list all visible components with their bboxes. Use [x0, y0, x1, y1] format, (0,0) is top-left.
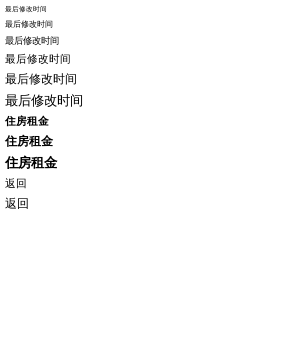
- staticText: 最后修改时间: [5, 19, 53, 29]
- staticText: 最后修改时间: [5, 5, 47, 13]
- staticText: 住房租金: [5, 115, 49, 128]
- staticText: 返回: [5, 196, 29, 211]
- staticText: 最后修改时间: [5, 35, 59, 46]
- staticText: 返回: [5, 177, 27, 190]
- staticText: 住房租金: [5, 154, 57, 171]
- staticText: 最后修改时间: [5, 92, 83, 109]
- staticText: 住房租金: [5, 134, 53, 148]
- staticText: 最后修改时间: [5, 72, 77, 86]
- staticText: 最后修改时间: [5, 52, 71, 66]
